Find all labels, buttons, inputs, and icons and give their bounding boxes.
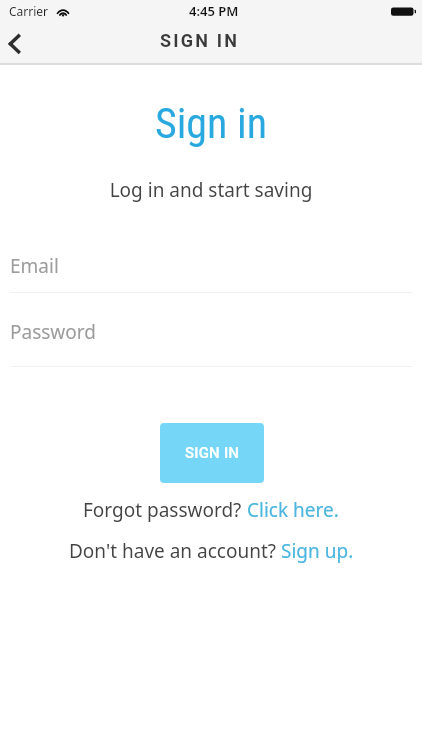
- staticText: SIGN IN: [160, 30, 240, 51]
- staticText: SIGN IN: [185, 444, 240, 462]
- button[interactable]: Back: [0, 23, 44, 65]
- staticText: Sign in: [0, 99, 422, 148]
- button[interactable]: Sign up.: [281, 538, 354, 564]
- staticText: Log in and start saving: [0, 177, 422, 203]
- staticText: Carrier: [9, 3, 49, 19]
- button[interactable]: Click here.: [247, 497, 339, 523]
- staticText: Password: [10, 319, 96, 345]
- staticText: Don't have an account?: [69, 538, 281, 564]
- button[interactable]: SIGN IN: [160, 423, 264, 483]
- staticText: Forgot password?: [83, 497, 247, 523]
- staticText: Email: [10, 253, 59, 279]
- staticText: 4:45 PM: [189, 2, 239, 20]
